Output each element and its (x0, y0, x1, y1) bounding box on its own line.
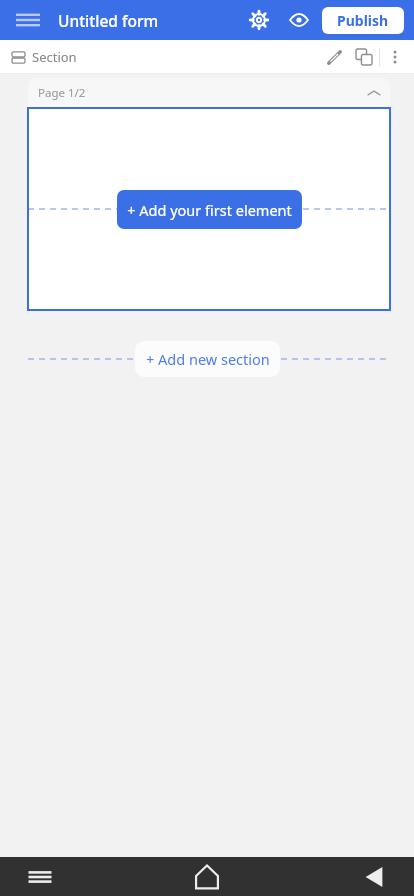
button[interactable]: Edit (319, 42, 349, 72)
button[interactable]: Home (186, 857, 228, 896)
button[interactable]: More options (380, 42, 410, 72)
button[interactable]: Page 1/2 (28, 78, 390, 108)
staticText: + Add new section (146, 349, 270, 369)
button[interactable]: Back (354, 857, 394, 896)
button[interactable]: Settings (242, 3, 276, 37)
button[interactable]: Section (12, 48, 77, 66)
button[interactable]: Preview (282, 3, 316, 37)
staticText: Page 1/2 (38, 85, 86, 101)
staticText: Untitled form (58, 10, 159, 31)
button[interactable]: Publish (322, 7, 404, 34)
button[interactable]: Recent apps (20, 857, 60, 896)
button[interactable]: + Add new section (135, 341, 280, 377)
button[interactable]: Duplicate (349, 42, 379, 72)
staticText: Section (32, 48, 77, 66)
staticText: Publish (337, 11, 389, 30)
button[interactable]: Menu (12, 4, 44, 36)
staticText: + Add your first element (127, 200, 292, 220)
button[interactable]: + Add your first element (117, 190, 302, 229)
